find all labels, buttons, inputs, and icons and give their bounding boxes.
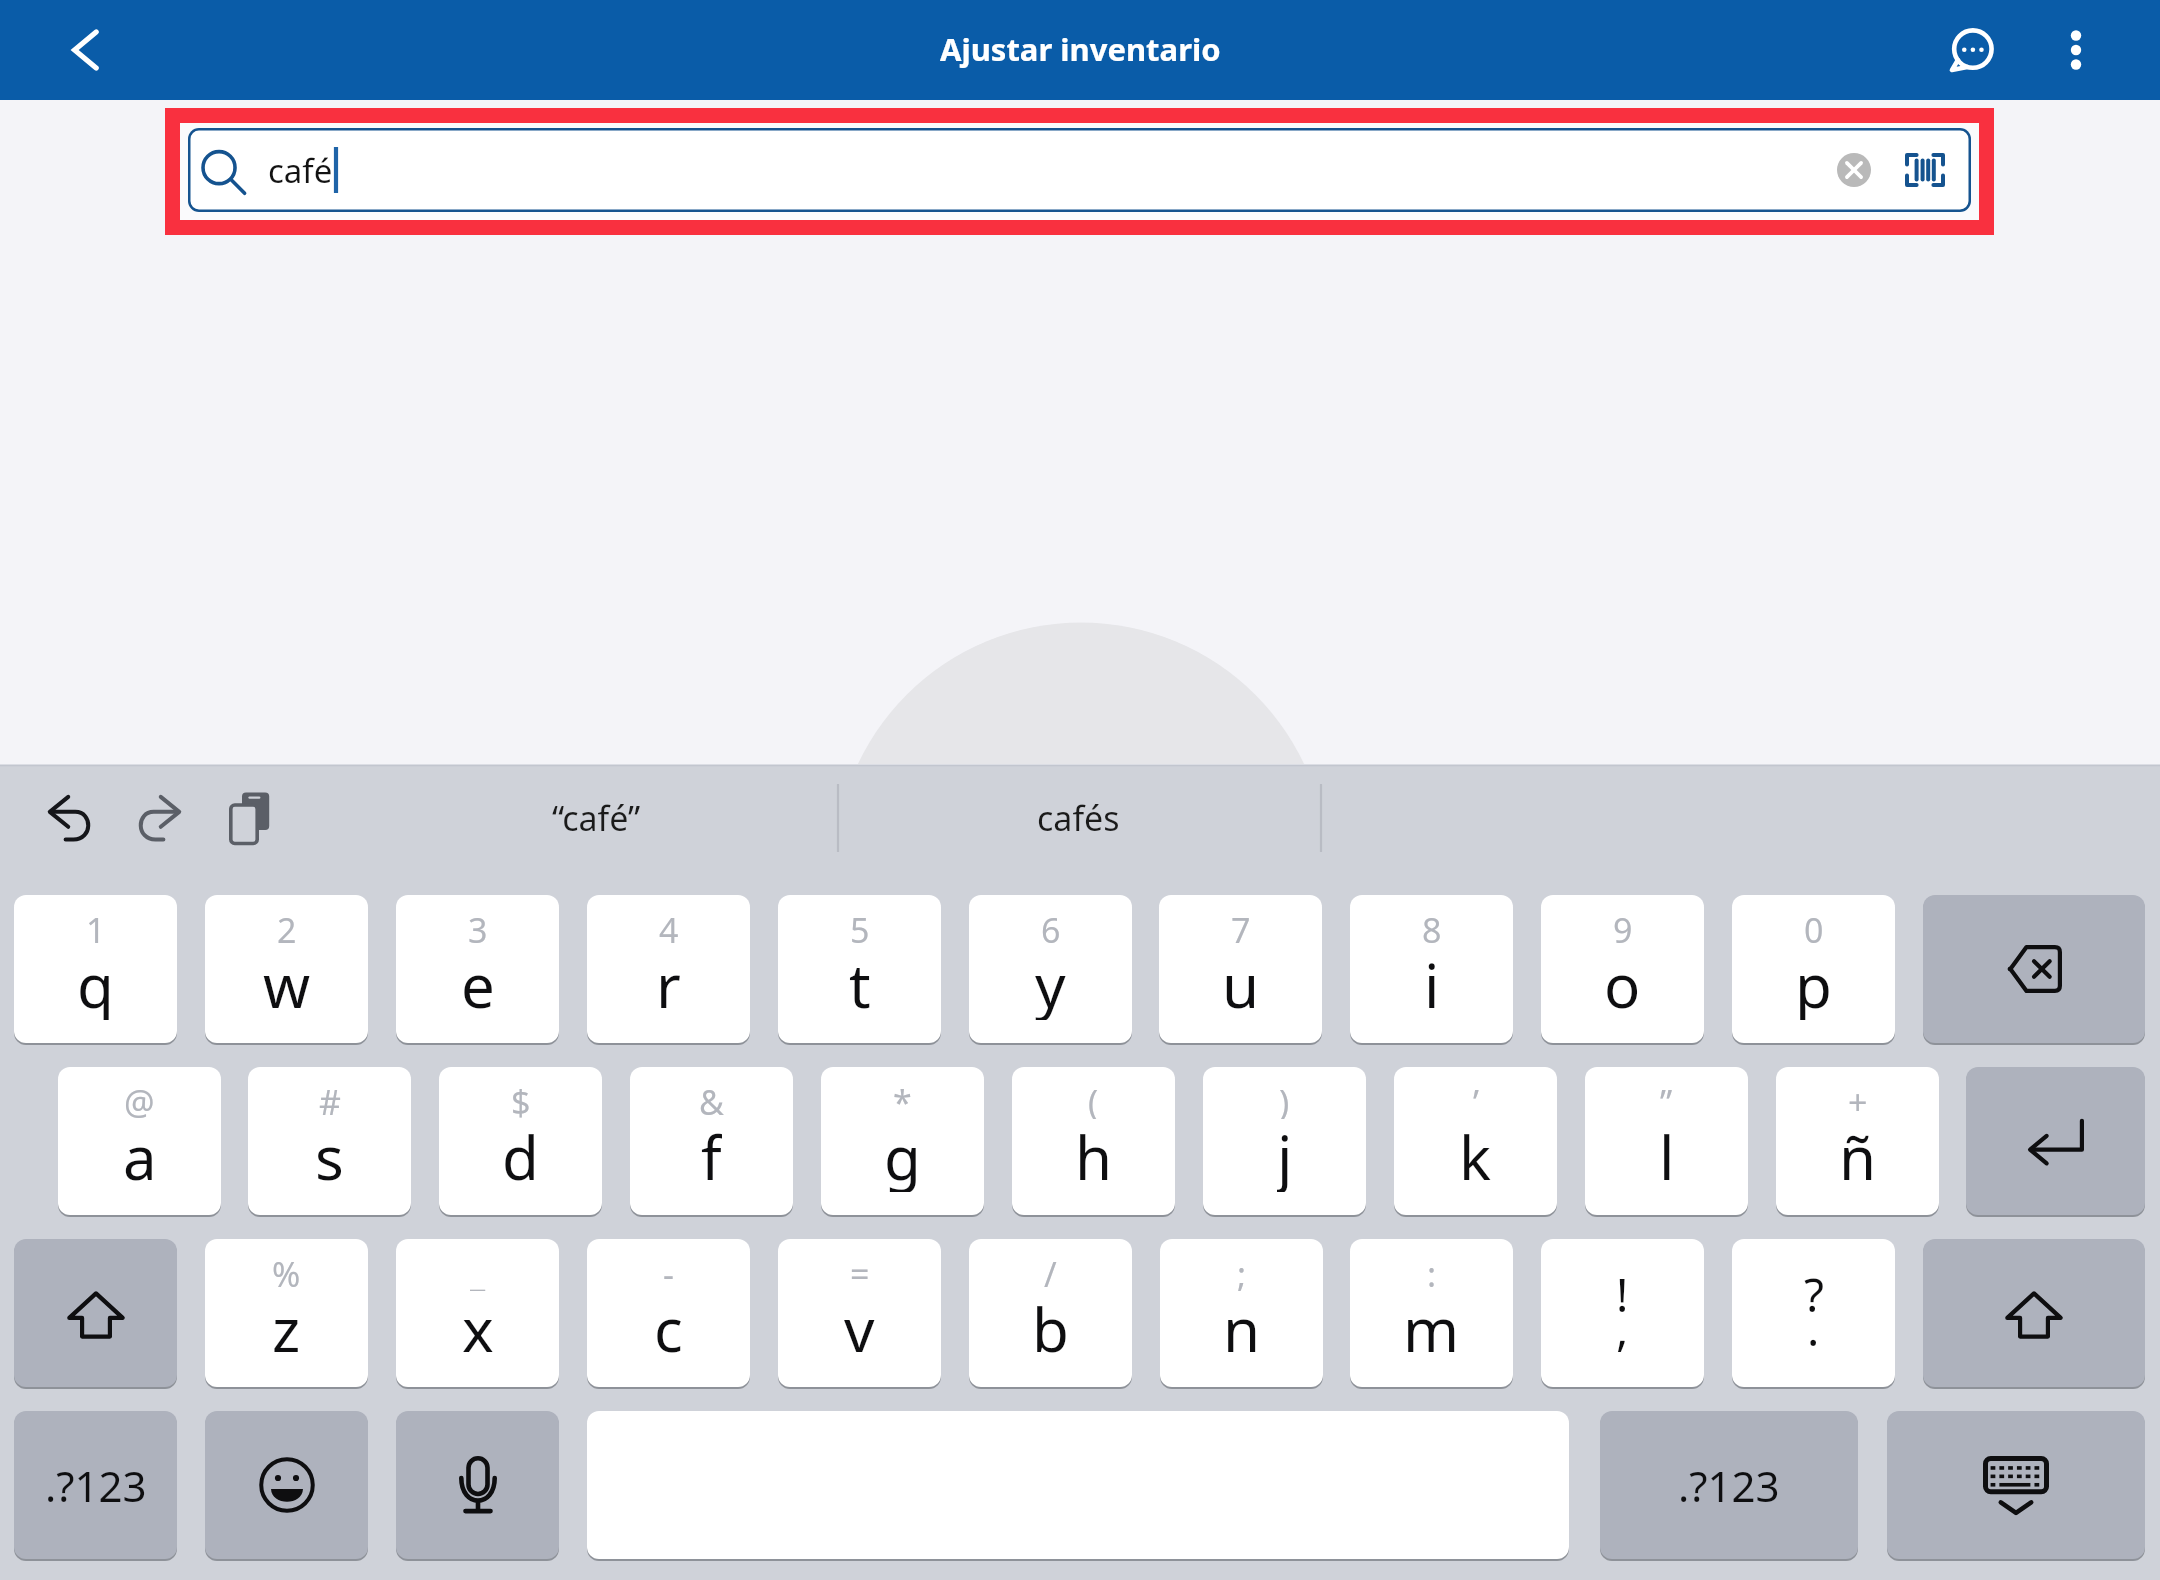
button[interactable]: - (587, 1239, 750, 1387)
staticText: Ajustar inventario (940, 28, 1221, 70)
button[interactable]: Paste (219, 787, 281, 849)
button[interactable]: Back (38, 5, 128, 95)
button[interactable]: Voice input (396, 1411, 559, 1559)
button[interactable]: % (205, 1239, 368, 1387)
staticText: : (1427, 1251, 1437, 1291)
staticText: “café” (552, 795, 641, 841)
button[interactable]: Hide keyboard (1887, 1411, 2145, 1559)
button[interactable]: cafés (878, 754, 1278, 882)
staticText: o (1604, 944, 1641, 1020)
button[interactable]: : (1350, 1239, 1513, 1387)
button[interactable]: & (630, 1067, 793, 1215)
staticText: ’ (1473, 1079, 1479, 1119)
staticText: y (1035, 944, 1066, 1020)
button[interactable]: 5 (778, 895, 941, 1043)
staticText: z (272, 1288, 301, 1364)
button[interactable]: Shift (14, 1239, 177, 1387)
staticText: 6 (1041, 907, 1061, 947)
button[interactable]: café (188, 128, 1971, 212)
button[interactable]: ) (1203, 1067, 1366, 1215)
button[interactable]: ( (1012, 1067, 1175, 1215)
button[interactable]: Scan barcode (1890, 135, 1960, 205)
button[interactable]: .?123 (14, 1411, 177, 1559)
staticText: 1 (86, 907, 106, 947)
staticText: * (893, 1079, 912, 1119)
staticText: % (272, 1251, 301, 1291)
staticText: l (1659, 1116, 1675, 1192)
staticText: 8 (1422, 907, 1442, 947)
staticText: ) (1279, 1079, 1290, 1119)
staticText: 3 (468, 907, 488, 947)
button[interactable]: Clear (1819, 135, 1889, 205)
staticText: .?123 (1678, 1457, 1780, 1514)
button[interactable]: “café” (396, 754, 796, 882)
staticText: n (1223, 1288, 1261, 1364)
button[interactable]: ! (1541, 1239, 1704, 1387)
button[interactable]: .?123 (1600, 1411, 1858, 1559)
staticText: h (1075, 1116, 1113, 1192)
button[interactable]: Shift (1923, 1239, 2145, 1387)
button[interactable]: 6 (969, 895, 1132, 1043)
staticText: m (1403, 1288, 1460, 1364)
staticText: , (1616, 1297, 1629, 1360)
staticText: ? (1804, 1263, 1824, 1326)
staticText: _ (470, 1251, 486, 1291)
button[interactable]: ; (1160, 1239, 1323, 1387)
button[interactable]: @ (58, 1067, 221, 1215)
button[interactable]: 4 (587, 895, 750, 1043)
button[interactable]: Redo (128, 787, 190, 849)
button[interactable]: * (821, 1067, 984, 1215)
button[interactable]: Emoji (205, 1411, 368, 1559)
button[interactable]: $ (439, 1067, 602, 1215)
button[interactable]: # (248, 1067, 411, 1215)
staticText: p (1795, 944, 1832, 1020)
button[interactable]: 0 (1732, 895, 1895, 1043)
staticText: + (1848, 1079, 1868, 1119)
button[interactable]: _ (396, 1239, 559, 1387)
staticText: i (1424, 944, 1440, 1020)
staticText: 4 (659, 907, 679, 947)
staticText: ” (1660, 1079, 1673, 1119)
button[interactable]: 2 (205, 895, 368, 1043)
staticText: .?123 (45, 1457, 147, 1514)
staticText: c (654, 1288, 683, 1364)
button[interactable]: Backspace (1923, 895, 2145, 1043)
staticText: ñ (1839, 1116, 1877, 1192)
button[interactable]: ? (1732, 1239, 1895, 1387)
staticText: $ (511, 1079, 531, 1119)
button[interactable]: Chat (1926, 4, 2018, 96)
button[interactable]: Enter (1966, 1067, 2145, 1215)
staticText: ; (1237, 1251, 1247, 1291)
staticText: w (263, 944, 311, 1020)
staticText: a (123, 1116, 157, 1192)
staticText: @ (124, 1079, 155, 1119)
button[interactable]: 1 (14, 895, 177, 1043)
button[interactable]: / (969, 1239, 1132, 1387)
button[interactable]: ” (1585, 1067, 1748, 1215)
staticText: b (1032, 1288, 1069, 1364)
staticText: r (656, 944, 681, 1020)
button[interactable]: More options (2034, 8, 2118, 92)
staticText: u (1222, 944, 1260, 1020)
staticText: 7 (1231, 907, 1251, 947)
button[interactable]: Undo (39, 787, 101, 849)
button[interactable]: 3 (396, 895, 559, 1043)
staticText: ! (1616, 1263, 1629, 1326)
button[interactable]: 8 (1350, 895, 1513, 1043)
staticText: q (77, 944, 114, 1020)
button[interactable]: 9 (1541, 895, 1704, 1043)
staticText: j (1277, 1116, 1293, 1192)
staticText: s (315, 1116, 344, 1192)
staticText: e (461, 944, 495, 1020)
staticText: cafés (1037, 795, 1120, 841)
button[interactable]: ’ (1394, 1067, 1557, 1215)
staticText: f (701, 1116, 722, 1192)
button[interactable]: + (1776, 1067, 1939, 1215)
staticText: . (1807, 1297, 1820, 1360)
staticText: d (502, 1116, 539, 1192)
button[interactable]: = (778, 1239, 941, 1387)
button[interactable]: 7 (1159, 895, 1322, 1043)
staticText: v (844, 1288, 875, 1364)
staticText: x (462, 1288, 494, 1364)
